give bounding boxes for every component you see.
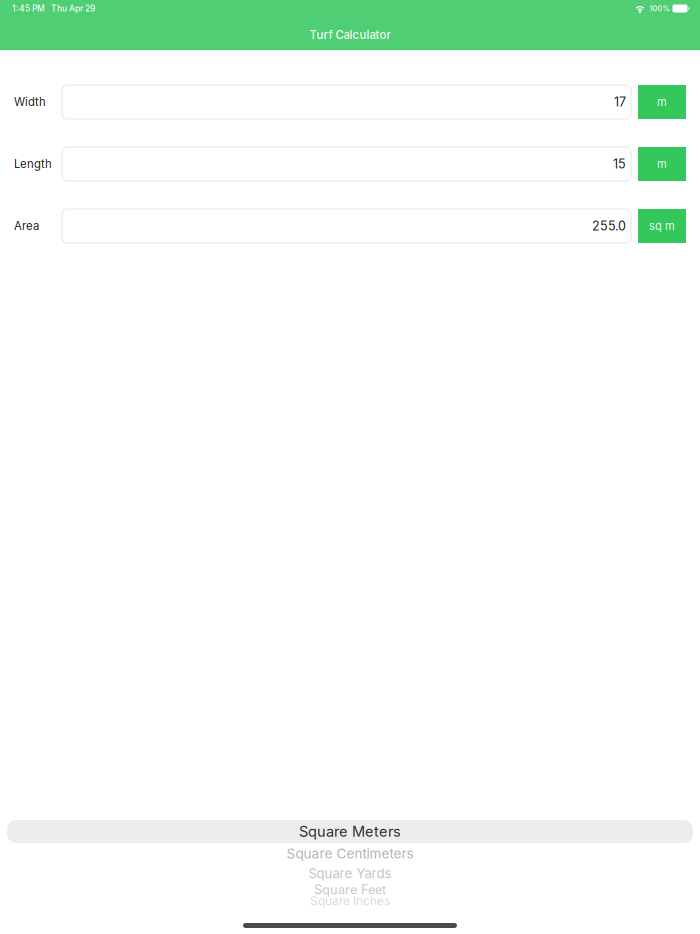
staticText: 17 [614, 94, 626, 110]
button[interactable]: sq m [638, 209, 686, 243]
staticText: 1:45 PM [12, 3, 45, 14]
staticText: Square Inches [310, 896, 390, 905]
staticText: Turf Calculator [309, 28, 390, 42]
staticText: Square Centimeters [286, 845, 413, 862]
button[interactable]: m [638, 85, 686, 119]
staticText: m [657, 157, 667, 171]
button[interactable]: 255.0 [62, 209, 631, 243]
staticText: 255.0 [592, 218, 626, 234]
staticText: Square Meters [299, 823, 401, 840]
staticText: sq m [649, 219, 675, 233]
staticText: 100% [649, 4, 669, 13]
button[interactable]: 17 [62, 85, 631, 119]
staticText: Length [14, 157, 52, 171]
staticText: Width [14, 95, 46, 109]
button[interactable]: 15 [62, 147, 631, 181]
staticText: m [657, 95, 667, 109]
staticText: Square Yards [308, 867, 391, 880]
staticText: Area [14, 219, 39, 233]
staticText: Square Feet [314, 884, 386, 895]
staticText: Thu Apr 29 [51, 3, 95, 14]
button[interactable]: m [638, 147, 686, 181]
staticText: 15 [613, 156, 626, 172]
